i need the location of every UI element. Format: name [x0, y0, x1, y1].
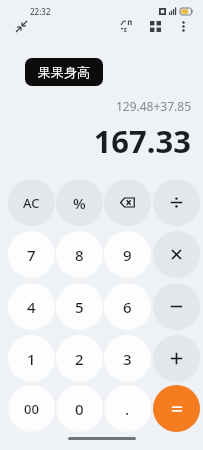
- button[interactable]: 2: [56, 335, 103, 382]
- staticText: %: [73, 193, 86, 213]
- button[interactable]: %: [56, 179, 103, 226]
- staticText: 00: [24, 400, 39, 418]
- button[interactable]: 5: [56, 283, 103, 330]
- button[interactable]: 4: [8, 283, 55, 330]
- button[interactable]: Subtract: [153, 283, 200, 330]
- staticText: 果果身高: [38, 64, 90, 80]
- button[interactable]: 7: [8, 231, 55, 278]
- button[interactable]: More options: [169, 12, 197, 40]
- button[interactable]: Backspace: [104, 179, 151, 226]
- staticText: 9: [123, 245, 132, 265]
- button[interactable]: 3: [104, 335, 151, 382]
- staticText: 6: [123, 297, 132, 317]
- staticText: 5: [75, 297, 84, 317]
- button[interactable]: AC: [8, 179, 55, 226]
- staticText: 1: [27, 349, 36, 369]
- button[interactable]: Multiply: [153, 231, 200, 278]
- button[interactable]: Add: [153, 335, 200, 382]
- staticText: AC: [23, 194, 40, 212]
- button[interactable]: 9: [104, 231, 151, 278]
- button[interactable]: Equals: [153, 385, 200, 432]
- staticText: 8: [75, 245, 84, 265]
- button[interactable]: 0: [56, 385, 103, 432]
- staticText: 22:32: [30, 6, 51, 17]
- button[interactable]: Divide: [153, 179, 200, 226]
- staticText: 7: [27, 245, 36, 265]
- button[interactable]: 8: [56, 231, 103, 278]
- button[interactable]: Collapse: [8, 13, 34, 39]
- button[interactable]: Unit converter: [113, 12, 141, 40]
- button[interactable]: Keypad layout: [141, 12, 169, 40]
- staticText: 129.48+37.85: [115, 98, 191, 114]
- button[interactable]: 00: [8, 385, 55, 432]
- button[interactable]: 6: [104, 283, 151, 330]
- staticText: 2: [75, 349, 84, 369]
- button[interactable]: .: [104, 385, 151, 432]
- staticText: .: [125, 399, 130, 419]
- staticText: 4: [27, 297, 36, 317]
- staticText: 0: [75, 399, 84, 419]
- staticText: 167.33: [93, 120, 191, 162]
- button[interactable]: 1: [8, 335, 55, 382]
- button[interactable]: 果果身高: [25, 58, 103, 86]
- staticText: 3: [123, 349, 132, 369]
